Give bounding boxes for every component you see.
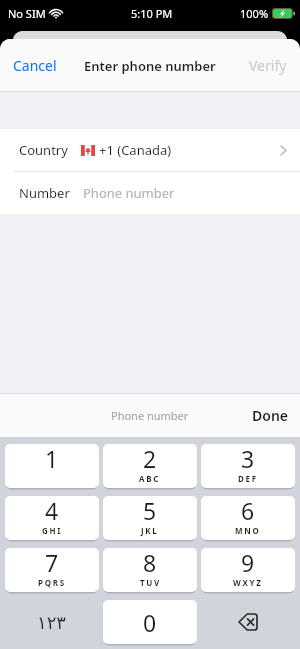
staticText: 5:10 PM xyxy=(131,6,173,21)
button[interactable]: 9 xyxy=(201,548,295,592)
staticText: MNO xyxy=(235,525,261,536)
staticText: WXYZ xyxy=(233,577,263,588)
staticText: Phone number xyxy=(83,184,175,202)
staticText: Verify xyxy=(249,56,287,75)
staticText: GHI xyxy=(42,525,63,536)
staticText: Enter phone number xyxy=(84,57,216,75)
staticText: 5 xyxy=(143,496,157,526)
staticText: Phone number xyxy=(111,408,189,423)
button[interactable]: Cancel xyxy=(0,48,65,83)
staticText: ١٢٣ xyxy=(37,612,67,633)
staticText: Number xyxy=(19,184,70,202)
staticText: 1 xyxy=(45,444,59,474)
staticText: 7 xyxy=(45,548,59,578)
button[interactable]: 8 xyxy=(103,548,197,592)
staticText: 0 xyxy=(143,607,157,638)
staticText: JKL xyxy=(141,525,159,536)
staticText: TUV xyxy=(140,577,161,588)
staticText: ABC xyxy=(139,473,161,484)
staticText: 4 xyxy=(45,496,59,526)
button[interactable]: 1 xyxy=(5,444,99,488)
button[interactable]: 4 xyxy=(5,496,99,540)
button[interactable]: 6 xyxy=(201,496,295,540)
staticText: 2 xyxy=(143,444,157,474)
staticText: Done xyxy=(252,406,289,425)
staticText: No SIM xyxy=(8,6,46,21)
staticText: +1 (Canada) xyxy=(99,141,172,159)
button[interactable]: Done xyxy=(238,396,300,435)
button[interactable]: 5 xyxy=(103,496,197,540)
staticText: 9 xyxy=(241,548,255,578)
staticText: Country xyxy=(19,141,68,159)
button[interactable]: 2 xyxy=(103,444,197,488)
button[interactable]: Delete xyxy=(201,600,295,644)
button[interactable]: Verify xyxy=(241,48,300,83)
button[interactable]: ١٢٣ xyxy=(5,600,99,644)
staticText: PQRS xyxy=(38,577,66,588)
button[interactable]: Number xyxy=(0,172,300,214)
staticText: 100% xyxy=(240,6,269,21)
staticText: DEF xyxy=(238,473,258,484)
button[interactable]: 7 xyxy=(5,548,99,592)
staticText: 8 xyxy=(143,548,157,578)
staticText: 6 xyxy=(241,496,255,526)
staticText: 3 xyxy=(241,444,255,474)
button[interactable]: Country xyxy=(0,129,300,171)
staticText: Cancel xyxy=(13,56,57,75)
button[interactable]: 0 xyxy=(103,600,197,644)
button[interactable]: 3 xyxy=(201,444,295,488)
